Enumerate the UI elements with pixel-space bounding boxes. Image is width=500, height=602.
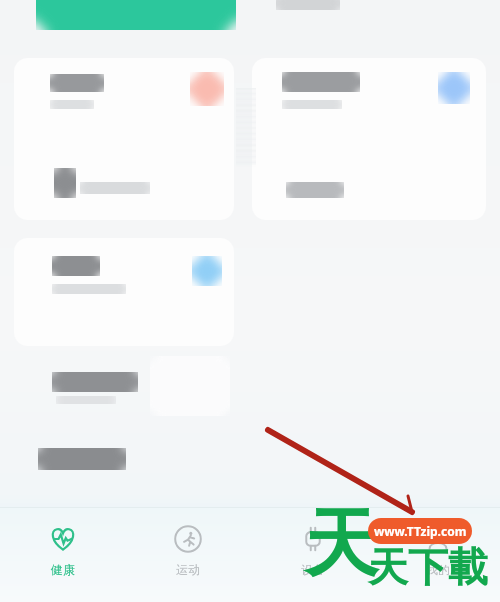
other: Heart rate — [438, 72, 470, 104]
button[interactable]: 运动 — [125, 508, 250, 602]
button[interactable]: Profile — [375, 508, 500, 602]
other: Device — [299, 525, 327, 553]
staticText: 设备 — [301, 562, 325, 577]
staticText: 健康 — [51, 562, 75, 577]
staticText: 天下載 — [368, 542, 488, 592]
button[interactable]: 健康 — [0, 508, 125, 602]
button[interactable]: Sleep — [14, 58, 234, 220]
other: Profile — [424, 525, 452, 553]
button[interactable]: Device — [250, 508, 375, 602]
staticText: 天 — [304, 498, 378, 591]
button[interactable]: Blood oxygen — [14, 238, 234, 346]
staticText: 我的 — [426, 562, 450, 577]
other: Sleep — [190, 72, 224, 106]
other: Blood oxygen — [192, 256, 222, 286]
staticText: www.TTzip.com — [374, 523, 467, 539]
button[interactable]: Heart rate — [252, 58, 486, 220]
staticText: 运动 — [176, 562, 200, 577]
button[interactable] — [36, 0, 236, 30]
